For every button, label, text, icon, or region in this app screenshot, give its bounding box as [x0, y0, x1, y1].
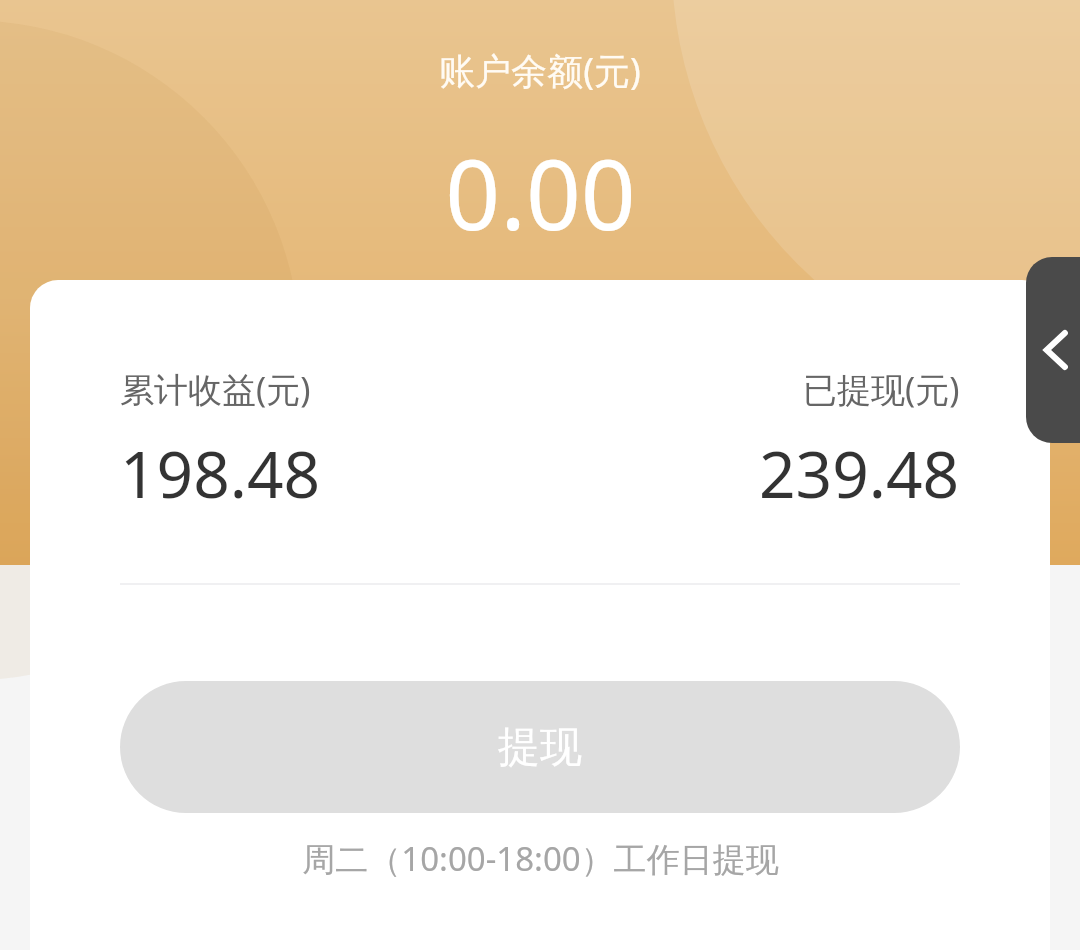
button[interactable]: Open side panel [1026, 257, 1080, 443]
staticText: 累计收益(元) [120, 366, 311, 412]
staticText: 周二（10:00-18:00）工作日提现 [302, 836, 779, 881]
staticText: 198.48 [120, 430, 321, 517]
staticText: 已提现(元) [803, 366, 960, 412]
staticText: 账户余额(元) [439, 46, 641, 95]
staticText: 提现 [498, 721, 582, 774]
button[interactable]: 提现 [120, 681, 960, 813]
staticText: 239.48 [759, 430, 960, 517]
staticText: 0.00 [445, 127, 636, 258]
